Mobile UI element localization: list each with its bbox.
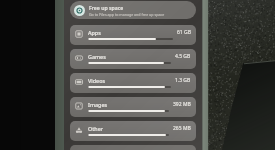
staticText: Videos — [88, 77, 106, 84]
other: games — [75, 54, 83, 62]
staticText: 4.5 GB — [175, 53, 191, 60]
staticText: Images — [88, 101, 108, 108]
staticText: 61 GB — [177, 29, 191, 36]
other: apps — [75, 30, 83, 38]
staticText: Games — [88, 53, 106, 60]
button[interactable] — [70, 145, 196, 150]
other: images — [75, 102, 83, 110]
staticText: Apps — [88, 29, 101, 36]
button[interactable]: other — [70, 121, 196, 141]
button[interactable]: images — [70, 97, 196, 117]
other: videos — [75, 78, 83, 86]
other: other — [75, 126, 83, 134]
button[interactable]: apps — [70, 25, 196, 45]
staticText: 1.3 GB — [175, 77, 191, 84]
staticText: Free up space — [89, 4, 124, 11]
button[interactable]: games — [70, 49, 196, 69]
staticText: 265 MB — [173, 125, 191, 132]
staticText: Other — [88, 125, 104, 132]
button[interactable]: videos — [70, 73, 196, 93]
staticText: 392 MB — [173, 101, 191, 108]
staticText: Go to Files app to manage and free up sp… — [89, 12, 165, 17]
button[interactable]: Free up space — [70, 1, 196, 19]
